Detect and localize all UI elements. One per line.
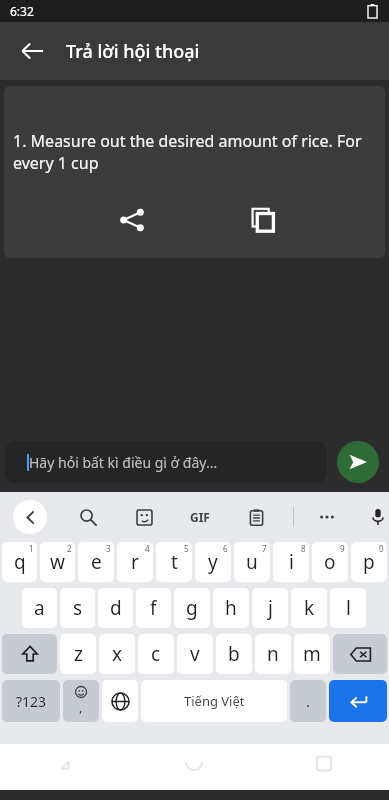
staticText: GIF	[190, 509, 210, 525]
button[interactable]: .	[290, 680, 326, 722]
button[interactable]: i	[273, 542, 309, 582]
button[interactable]: y	[195, 542, 231, 582]
staticText: u	[246, 549, 258, 575]
button[interactable]: Stickers	[129, 502, 159, 532]
staticText: t	[171, 549, 178, 575]
staticText: 3	[106, 543, 111, 554]
staticText: ?123	[16, 692, 47, 711]
staticText: h	[225, 595, 237, 621]
button[interactable]: Recent apps	[259, 744, 389, 790]
button[interactable]: k	[291, 588, 327, 628]
button[interactable]: h	[213, 588, 249, 628]
staticText: g	[186, 595, 198, 621]
button[interactable]: v	[177, 634, 213, 674]
button[interactable]: e	[78, 542, 114, 582]
staticText: 5	[184, 543, 189, 554]
button[interactable]: Tiếng Việt	[141, 680, 287, 722]
staticText: 7	[262, 543, 267, 554]
staticText: c	[151, 641, 161, 667]
button[interactable]: Voice input	[366, 502, 389, 532]
staticText: q	[14, 549, 26, 575]
button[interactable]: n	[255, 634, 291, 674]
staticText: f	[150, 595, 157, 621]
staticText: n	[267, 641, 279, 667]
button[interactable]: r	[117, 542, 153, 582]
staticText: j	[268, 595, 273, 621]
button[interactable]: Hãy hỏi bất kì điều gì ở đây...	[5, 441, 327, 483]
button[interactable]: z	[60, 634, 96, 674]
button[interactable]: u	[234, 542, 270, 582]
button[interactable]: Back	[8, 27, 56, 75]
staticText: 4	[145, 543, 150, 554]
staticText: Hãy hỏi bất kì điều gì ở đây...	[29, 453, 218, 472]
button[interactable]: Close toolbar	[13, 500, 47, 534]
button[interactable]: Enter	[329, 680, 387, 722]
staticText: r	[131, 549, 139, 575]
button[interactable]: t	[156, 542, 192, 582]
staticText: l	[346, 595, 351, 621]
button[interactable]: d	[98, 588, 133, 628]
button[interactable]: ?123	[2, 680, 60, 722]
staticText: .	[306, 691, 311, 711]
staticText: i	[289, 549, 294, 575]
staticText: 9	[340, 543, 345, 554]
staticText: w	[50, 549, 65, 575]
staticText: m	[303, 641, 321, 667]
button[interactable]: Backspace	[333, 634, 387, 674]
staticText: y	[208, 549, 218, 575]
button[interactable]: p	[351, 542, 387, 582]
button[interactable]: q	[2, 542, 37, 582]
staticText: 1	[29, 543, 34, 554]
staticText: 0	[379, 543, 384, 554]
button[interactable]: Copy	[239, 196, 287, 244]
button[interactable]: s	[60, 588, 95, 628]
staticText: a	[34, 595, 45, 621]
button[interactable]: m	[294, 634, 330, 674]
staticText: o	[324, 549, 336, 575]
button[interactable]: j	[252, 588, 288, 628]
button[interactable]: Search	[73, 502, 103, 532]
staticText: p	[363, 549, 375, 575]
button[interactable]: g	[174, 588, 210, 628]
staticText: s	[73, 595, 83, 621]
button[interactable]: Send	[337, 441, 379, 483]
staticText: 2	[67, 543, 72, 554]
button[interactable]: Emoji and comma	[63, 680, 99, 722]
button[interactable]: f	[136, 588, 171, 628]
button[interactable]: Change language	[102, 680, 138, 722]
button[interactable]: b	[216, 634, 252, 674]
button[interactable]: Share	[108, 196, 156, 244]
button[interactable]: GIF	[185, 502, 215, 532]
button[interactable]: Clipboard	[241, 502, 271, 532]
button[interactable]: c	[138, 634, 174, 674]
button[interactable]: w	[40, 542, 75, 582]
staticText: Trả lời hội thoại	[66, 39, 200, 64]
button[interactable]: x	[99, 634, 135, 674]
staticText: 1. Measure out the desired amount of ric…	[13, 130, 379, 174]
button[interactable]: o	[312, 542, 348, 582]
button[interactable]: Shift	[2, 634, 57, 674]
button[interactable]: a	[22, 588, 57, 628]
staticText: d	[110, 595, 122, 621]
staticText: 6:32	[10, 3, 34, 19]
button[interactable]: More options	[312, 502, 342, 532]
staticText: x	[112, 641, 123, 667]
staticText: e	[91, 549, 102, 575]
staticText: v	[190, 641, 200, 667]
staticText: b	[228, 641, 240, 667]
staticText: z	[74, 641, 83, 667]
button[interactable]: l	[330, 588, 366, 628]
staticText: k	[304, 595, 315, 621]
staticText: 8	[301, 543, 306, 554]
staticText: Tiếng Việt	[184, 692, 245, 710]
staticText: ,	[79, 698, 83, 716]
staticText: 6	[223, 543, 228, 554]
